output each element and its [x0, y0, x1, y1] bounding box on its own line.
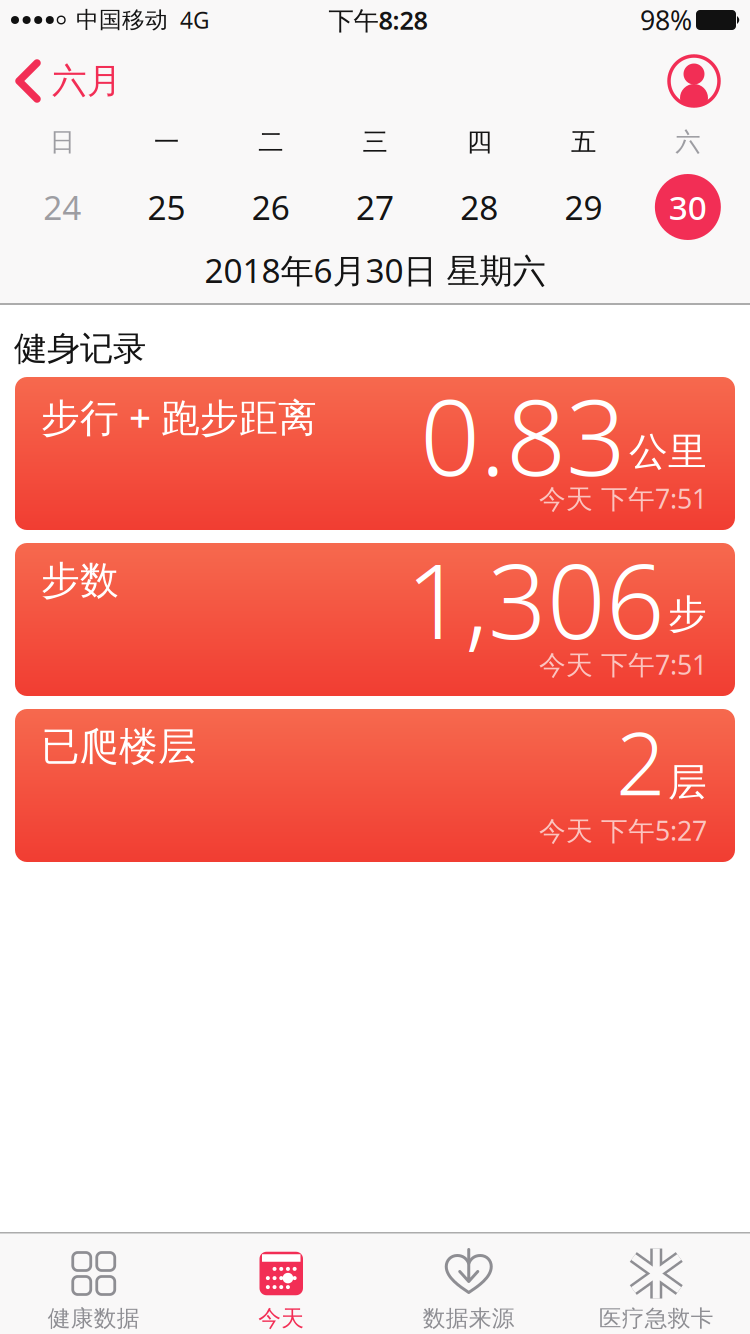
- staticText: 步数: [41, 557, 119, 604]
- staticText: 2018年6月30日 星期六: [204, 248, 545, 292]
- button[interactable]: 步行 + 跑步距离: [15, 377, 735, 530]
- button[interactable]: 步数: [15, 543, 735, 696]
- button[interactable]: 26: [219, 185, 323, 229]
- button[interactable]: 数据来源: [375, 1251, 562, 1332]
- staticText: 98%: [640, 2, 692, 38]
- button[interactable]: 已爬楼层: [15, 709, 735, 862]
- staticText: 步: [668, 590, 707, 638]
- button[interactable]: 29: [531, 185, 636, 229]
- button[interactable]: 25: [114, 185, 219, 229]
- staticText: 层: [668, 758, 707, 806]
- button[interactable]: 24: [10, 185, 114, 229]
- button[interactable]: 27: [323, 185, 427, 229]
- staticText: 1,306: [406, 531, 665, 667]
- staticText: 健身记录: [14, 328, 146, 369]
- staticText: 今天 下午5:27: [539, 813, 707, 848]
- staticText: 二: [258, 126, 283, 157]
- staticText: 六月: [52, 60, 122, 102]
- staticText: 今天: [258, 1304, 304, 1332]
- staticText: 日: [50, 126, 75, 157]
- staticText: 今天 下午7:51: [539, 481, 707, 516]
- staticText: 四: [467, 126, 492, 157]
- button[interactable]: 医疗急救卡: [562, 1251, 750, 1332]
- staticText: 步行 + 跑步距离: [41, 391, 317, 442]
- staticText: 已爬楼层: [41, 723, 197, 770]
- button[interactable]: 六月: [0, 60, 122, 102]
- staticText: 25: [147, 185, 185, 229]
- staticText: 五: [571, 126, 596, 157]
- button[interactable]: 30: [636, 174, 740, 240]
- staticText: 2: [616, 704, 665, 819]
- button[interactable]: 健康资料: [668, 55, 750, 107]
- button[interactable]: 28: [427, 185, 531, 229]
- staticText: 30: [669, 185, 707, 229]
- staticText: 数据来源: [423, 1304, 515, 1332]
- button[interactable]: 今天: [187, 1251, 375, 1332]
- staticText: 26: [252, 185, 290, 229]
- staticText: 公里: [629, 428, 707, 476]
- staticText: 0.83: [420, 365, 626, 505]
- staticText: 24: [43, 185, 81, 229]
- staticText: 中国移动: [76, 6, 168, 34]
- staticText: 下午8:28: [328, 3, 427, 37]
- staticText: 医疗急救卡: [599, 1304, 714, 1332]
- staticText: 三: [362, 126, 387, 157]
- staticText: 健康数据: [48, 1304, 140, 1332]
- staticText: 六: [675, 126, 700, 157]
- staticText: 28: [460, 185, 498, 229]
- button[interactable]: 健康数据: [0, 1251, 187, 1332]
- staticText: 4G: [180, 5, 210, 35]
- staticText: 今天 下午7:51: [539, 647, 707, 682]
- staticText: 一: [154, 126, 179, 157]
- staticText: 29: [565, 185, 603, 229]
- staticText: 27: [356, 185, 394, 229]
